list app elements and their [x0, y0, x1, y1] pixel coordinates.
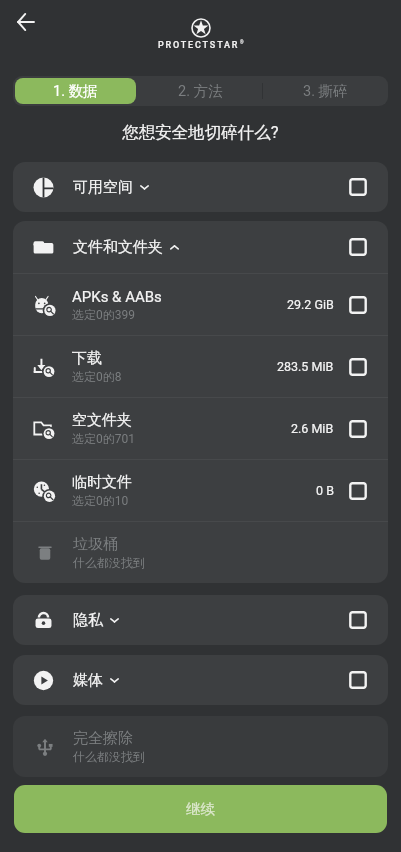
staticText: 您想安全地切碎什么? — [0, 122, 401, 143]
staticText: 选定0的8 — [72, 369, 122, 384]
button[interactable]: 空文件夹 — [13, 398, 388, 459]
staticText: 隐私 — [73, 611, 103, 630]
staticText: 2. 方法 — [178, 82, 223, 100]
button[interactable]: 3. 撕碎 — [263, 76, 388, 106]
staticText: 继续 — [186, 800, 215, 818]
staticText: 垃圾桶 — [73, 535, 118, 554]
button[interactable]: 1. 数据 — [15, 78, 136, 104]
staticText: 选定0的399 — [72, 307, 135, 322]
staticText: 1. 数据 — [53, 82, 98, 100]
staticText: 空文件夹 — [72, 411, 132, 430]
staticText: PROTECTSTAR — [158, 40, 240, 51]
staticText: 什么都没找到 — [73, 555, 145, 570]
staticText: APKs & AABs — [72, 288, 162, 306]
staticText: 选定0的701 — [72, 431, 135, 446]
button[interactable]: 2. 方法 — [138, 76, 263, 106]
staticText: 什么都没找到 — [73, 749, 145, 764]
staticText: 选定0的10 — [72, 493, 129, 508]
button[interactable]: APKs & AABs — [13, 274, 388, 335]
staticText: 文件和文件夹 — [73, 238, 163, 257]
button[interactable]: 文件和文件夹 — [13, 221, 388, 273]
staticText: 29.2 GiB — [287, 297, 334, 312]
staticText: 完全擦除 — [73, 729, 133, 748]
button[interactable]: Back — [9, 5, 43, 39]
button[interactable]: 临时文件 — [13, 460, 388, 521]
staticText: ® — [240, 40, 244, 45]
button[interactable]: 可用空间 — [13, 162, 388, 212]
staticText: 下载 — [72, 349, 102, 368]
staticText: 0 B — [316, 483, 334, 498]
staticText: 3. 撕碎 — [303, 82, 348, 100]
button[interactable]: 媒体 — [13, 655, 388, 705]
staticText: 可用空间 — [73, 178, 133, 197]
staticText: 临时文件 — [72, 473, 132, 492]
staticText: 2.6 MiB — [291, 421, 334, 436]
button[interactable]: 下载 — [13, 336, 388, 397]
button[interactable]: 继续 — [14, 785, 387, 833]
staticText: 283.5 MiB — [277, 359, 334, 374]
staticText: 媒体 — [73, 671, 103, 690]
button[interactable]: 隐私 — [13, 595, 388, 645]
